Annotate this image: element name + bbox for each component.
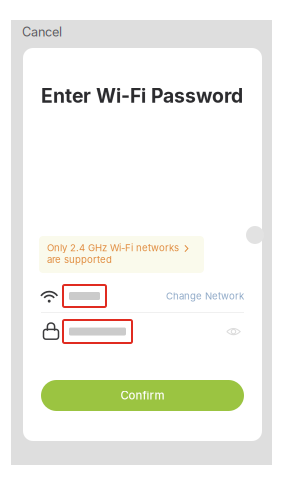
button[interactable]: Show password	[226, 326, 241, 337]
staticText: Cancel	[22, 24, 62, 40]
button[interactable]: Change Network	[166, 288, 244, 304]
staticText: Only 2.4 GHz Wi-Fi networks are supporte…	[47, 242, 179, 265]
staticText: Change Network	[166, 290, 244, 302]
button[interactable]: Only 2.4 GHz Wi-Fi networks are supporte…	[39, 236, 204, 273]
staticText: Enter Wi-Fi Password	[41, 84, 243, 107]
staticText: Confirm	[120, 389, 164, 402]
button[interactable]: Cancel	[22, 24, 70, 40]
button[interactable]: Confirm	[41, 380, 244, 411]
